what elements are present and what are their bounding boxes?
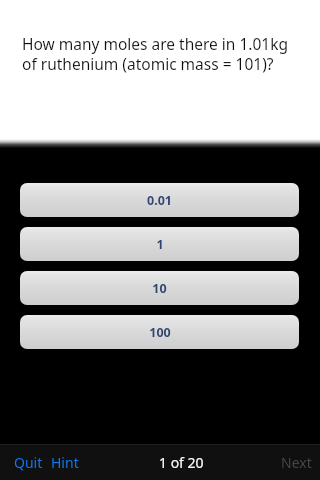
button[interactable]: 10 [20, 271, 299, 305]
button[interactable]: Quit [14, 453, 43, 472]
staticText: How many moles are there in 1.01kg of ru… [22, 33, 304, 75]
staticText: Quit [14, 453, 43, 472]
staticText: 1 [156, 236, 164, 253]
button[interactable]: 1 [20, 227, 299, 261]
button[interactable]: 0.01 [20, 183, 299, 217]
staticText: Hint [51, 453, 79, 472]
button[interactable]: Hint [51, 453, 79, 472]
button[interactable]: 100 [20, 315, 299, 349]
button[interactable]: Next [281, 453, 312, 472]
staticText: Next [281, 453, 312, 472]
staticText: 0.01 [147, 192, 172, 209]
staticText: 10 [152, 280, 167, 297]
staticText: 100 [149, 324, 171, 341]
staticText: 1 of 20 [159, 453, 204, 472]
